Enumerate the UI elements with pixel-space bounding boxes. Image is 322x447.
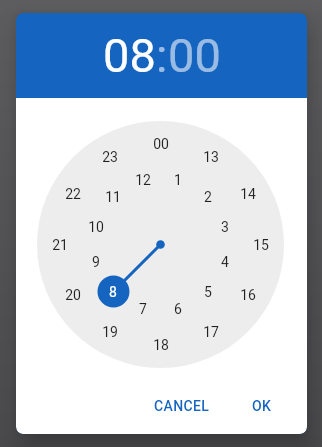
staticText: 9 xyxy=(92,254,100,270)
staticText: 3 xyxy=(221,219,229,235)
staticText: 2 xyxy=(204,189,212,205)
button[interactable]: 00 xyxy=(37,121,284,368)
staticText: : xyxy=(156,28,168,83)
staticText: 14 xyxy=(240,186,256,202)
staticText: 6 xyxy=(174,301,182,317)
staticText: 18 xyxy=(153,337,169,353)
staticText: 10 xyxy=(88,219,104,235)
staticText: 11 xyxy=(105,189,121,205)
button[interactable]: CANCEL xyxy=(146,388,218,424)
staticText: 16 xyxy=(240,287,256,303)
staticText: 13 xyxy=(203,149,219,165)
staticText: OK xyxy=(252,398,272,414)
staticText: 21 xyxy=(52,237,68,253)
staticText: 5 xyxy=(204,284,212,300)
staticText: CANCEL xyxy=(154,398,210,414)
staticText: 1 xyxy=(174,172,182,188)
staticText: 4 xyxy=(221,254,229,270)
button[interactable]: OK xyxy=(244,388,280,424)
staticText: 8 xyxy=(109,284,117,300)
staticText: 00 xyxy=(168,28,221,83)
staticText: 22 xyxy=(65,186,81,202)
staticText: 7 xyxy=(139,301,147,317)
staticText: 00 xyxy=(153,136,169,152)
staticText: 12 xyxy=(135,172,151,188)
staticText: 20 xyxy=(65,287,81,303)
staticText: 19 xyxy=(102,324,118,340)
staticText: 17 xyxy=(203,324,219,340)
staticText: 08 xyxy=(103,28,156,83)
staticText: 23 xyxy=(102,149,118,165)
staticText: 15 xyxy=(253,237,269,253)
